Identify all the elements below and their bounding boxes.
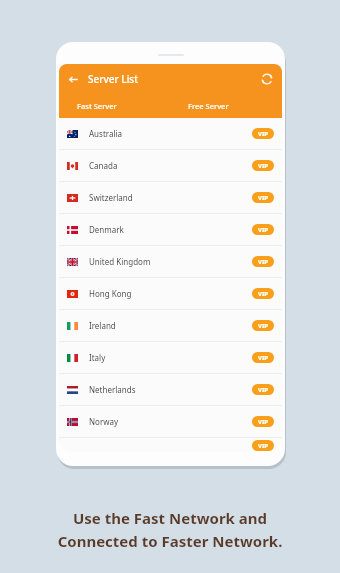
staticText: Netherlands	[89, 384, 136, 395]
staticText: Canada	[89, 160, 118, 171]
button[interactable]: Switzerland	[59, 182, 282, 213]
staticText: VIP	[258, 130, 268, 138]
button[interactable]: VIP	[252, 192, 274, 203]
button[interactable]: VIP	[252, 224, 274, 235]
button[interactable]: Denmark	[59, 214, 282, 245]
staticText: Ireland	[89, 320, 116, 331]
button[interactable]: Free Server	[170, 94, 282, 118]
button[interactable]: Australia	[59, 118, 282, 149]
button[interactable]: Ireland	[59, 310, 282, 341]
staticText: Switzerland	[89, 192, 133, 203]
staticText: United Kingdom	[89, 256, 151, 267]
button[interactable]: Netherlands	[59, 374, 282, 405]
staticText: VIP	[258, 386, 268, 394]
button[interactable]: VIP	[252, 160, 274, 171]
button[interactable]: VIP	[252, 256, 274, 267]
button[interactable]: VIP	[59, 438, 282, 452]
staticText: Server List	[88, 72, 139, 86]
button[interactable]: Back	[65, 71, 81, 87]
button[interactable]: Italy	[59, 342, 282, 373]
button[interactable]: Norway	[59, 406, 282, 437]
staticText: VIP	[258, 354, 268, 362]
staticText: Free Server	[188, 101, 229, 111]
staticText: Denmark	[89, 224, 124, 235]
staticText: Connected to Faster Network.	[0, 531, 340, 551]
staticText: Italy	[89, 352, 106, 363]
button[interactable]: Hong Kong	[59, 278, 282, 309]
staticText: VIP	[258, 226, 268, 234]
staticText: VIP	[258, 258, 268, 266]
staticText: Use the Fast Network and	[0, 508, 340, 528]
button[interactable]: VIP	[252, 288, 274, 299]
button[interactable]: Fast Server	[59, 94, 170, 118]
button[interactable]: VIP	[252, 320, 274, 331]
staticText: VIP	[258, 322, 268, 330]
button[interactable]: VIP	[252, 416, 274, 427]
staticText: Hong Kong	[89, 288, 132, 299]
staticText: Fast Server	[77, 101, 117, 111]
staticText: VIP	[258, 194, 268, 202]
button[interactable]: VIP	[252, 352, 274, 363]
button[interactable]: VIP	[252, 384, 274, 395]
button[interactable]: Canada	[59, 150, 282, 181]
staticText: Norway	[89, 416, 119, 427]
staticText: VIP	[258, 442, 268, 450]
staticText: Australia	[89, 128, 123, 139]
button[interactable]: VIP	[252, 440, 274, 451]
button[interactable]: Refresh	[258, 70, 276, 88]
button[interactable]: United Kingdom	[59, 246, 282, 277]
button[interactable]: VIP	[252, 128, 274, 139]
staticText: VIP	[258, 290, 268, 298]
staticText: VIP	[258, 162, 268, 170]
staticText: VIP	[258, 418, 268, 426]
